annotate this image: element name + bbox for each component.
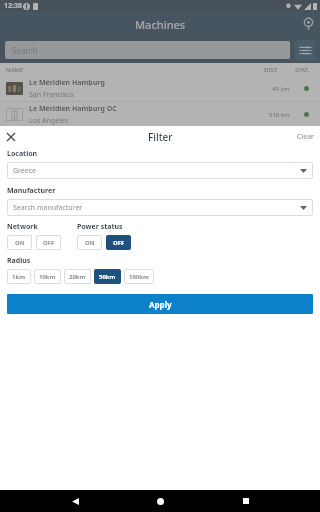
button[interactable]: Close [0,126,21,147]
button[interactable]: 50km [94,269,121,284]
button[interactable]: OFF [106,235,131,250]
button[interactable]: Greece [7,162,313,179]
staticText: Machines [135,17,186,32]
button[interactable]: Apply [7,294,313,314]
button[interactable]: Home [149,490,171,512]
staticText: 20km [69,273,86,281]
staticText: ON [85,239,95,247]
button[interactable]: Search manufacturer [7,199,313,216]
button[interactable]: 20km [64,269,91,284]
staticText: 1km [12,273,26,281]
staticText: 518 km [269,111,290,119]
button[interactable]: Map location [296,12,320,36]
staticText: Radius [7,256,31,266]
staticText: Clear [297,132,314,142]
staticText: Le Méridien Hamburg OC [29,104,117,114]
staticText: 50km [99,273,116,281]
button[interactable]: Clear [291,128,320,146]
staticText: Manufacturer [7,186,56,196]
button[interactable]: Search [5,41,290,59]
button[interactable]: ON [7,235,32,250]
staticText: 100km [129,273,149,281]
staticText: Power status [77,222,123,232]
button[interactable]: Le Méridien Hamburg OC [0,102,320,127]
staticText: 12:38 [4,1,22,11]
button[interactable]: OFF [36,235,61,250]
staticText: DIST. [264,66,279,74]
staticText: OFF [113,239,125,247]
button[interactable]: Filter [295,40,315,60]
button[interactable]: 100km [124,269,154,284]
staticText: Location [7,149,38,159]
button[interactable]: Le Méridien Hamburg [0,76,320,101]
staticText: Network [7,222,38,232]
staticText: NAME [6,66,24,74]
staticText: Filter [148,130,173,144]
button[interactable]: 10km [34,269,61,284]
staticText: Le Méridien Hamburg [29,78,105,88]
staticText: ON [15,239,25,247]
staticText: San Francisco [29,90,74,100]
staticText: Apply [149,299,172,310]
button[interactable]: Back [64,490,86,512]
staticText: 10km [39,273,56,281]
staticText: 49 km [272,85,290,93]
staticText: Greece [13,166,37,176]
staticText: OFF [43,239,55,247]
staticText: Search [12,45,38,56]
button[interactable]: ON [77,235,102,250]
button[interactable]: Recents [235,490,257,512]
button[interactable]: 1km [7,269,31,284]
staticText: STAT. [295,66,310,74]
staticText: Los Angeles [29,116,69,126]
staticText: Search manufacturer [13,203,83,213]
